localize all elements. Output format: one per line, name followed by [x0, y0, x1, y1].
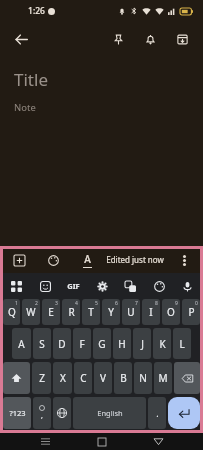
button[interactable]: H	[113, 328, 131, 359]
button[interactable]: M	[154, 362, 172, 394]
button[interactable]: Translate	[120, 276, 140, 296]
button[interactable]: ?123	[3, 397, 31, 429]
button[interactable]: S	[33, 328, 51, 359]
button[interactable]: T	[82, 299, 100, 325]
button[interactable]: Change language	[53, 397, 71, 429]
staticText: GIF	[67, 281, 80, 291]
staticText: C	[80, 371, 87, 385]
button[interactable]: Themes	[149, 276, 169, 296]
button[interactable]: Voice input	[177, 276, 197, 296]
button[interactable]: D	[53, 328, 71, 359]
button[interactable]: Back	[8, 26, 34, 52]
staticText: I	[149, 305, 153, 319]
staticText: 6	[115, 300, 118, 307]
staticText: E	[48, 305, 54, 319]
staticText: Edited just now	[106, 254, 164, 265]
staticText: L	[179, 337, 185, 351]
staticText: 5	[95, 300, 98, 307]
button[interactable]: Reminder	[137, 26, 163, 52]
button[interactable]: K	[153, 328, 171, 359]
button[interactable]: Settings	[92, 276, 112, 296]
button[interactable]: X	[53, 362, 72, 394]
staticText: 8	[155, 300, 158, 307]
staticText: N	[139, 371, 147, 385]
staticText: J	[141, 337, 144, 351]
staticText: Note	[14, 101, 36, 114]
staticText: Title	[14, 68, 48, 91]
staticText: K	[159, 337, 166, 351]
staticText: B	[120, 371, 127, 385]
button[interactable]: Color palette	[43, 250, 63, 270]
button[interactable]: B	[114, 362, 132, 394]
staticText: G	[98, 337, 106, 351]
button[interactable]: E	[42, 299, 60, 325]
staticText: 4	[75, 300, 78, 307]
button[interactable]: Home	[90, 433, 114, 450]
staticText: 2	[35, 300, 38, 307]
staticText: 9	[175, 300, 178, 307]
button[interactable]: V	[94, 362, 112, 394]
button[interactable]: G	[93, 328, 111, 359]
button[interactable]: Backspace	[174, 362, 200, 394]
staticText: V	[100, 371, 106, 385]
button[interactable]: Enter	[168, 397, 200, 429]
button[interactable]: Q	[3, 299, 20, 325]
staticText: P	[188, 305, 195, 319]
staticText: 1	[15, 300, 18, 307]
staticText: .	[156, 407, 159, 419]
button[interactable]: Recents	[33, 433, 57, 450]
button[interactable]: More options	[174, 250, 194, 270]
button[interactable]: Archive	[169, 26, 195, 52]
button[interactable]: Stickers	[35, 276, 55, 296]
button[interactable]: F	[73, 328, 91, 359]
staticText: ,	[41, 411, 43, 421]
button[interactable]: N	[134, 362, 152, 394]
staticText: 3	[55, 300, 58, 307]
button[interactable]: L	[173, 328, 191, 359]
staticText: Y	[108, 305, 114, 319]
button[interactable]: P	[182, 299, 200, 325]
staticText: D	[58, 337, 66, 351]
button[interactable]: I	[142, 299, 160, 325]
button[interactable]: Back	[146, 433, 170, 450]
staticText: Q	[8, 305, 16, 319]
staticText: 1:26	[28, 5, 45, 17]
staticText: U	[127, 305, 135, 319]
button[interactable]: Z	[32, 362, 51, 394]
button[interactable]: U	[122, 299, 140, 325]
button[interactable]: GIF	[63, 276, 83, 296]
button[interactable]: Shift	[3, 362, 30, 394]
staticText: A	[18, 337, 25, 351]
button[interactable]: English	[73, 397, 146, 429]
staticText: ?123	[9, 408, 26, 418]
staticText: X	[60, 371, 66, 385]
staticText: 7	[135, 300, 138, 307]
button[interactable]: O	[162, 299, 180, 325]
button[interactable]: J	[133, 328, 151, 359]
button[interactable]: C	[74, 362, 92, 394]
button[interactable]: W	[22, 299, 40, 325]
staticText: M	[158, 371, 168, 385]
staticText: W	[26, 305, 36, 319]
staticText: Z	[39, 371, 45, 385]
button[interactable]: Add	[9, 250, 29, 270]
button[interactable]: R	[62, 299, 80, 325]
button[interactable]: Pin	[105, 26, 131, 52]
staticText: H	[118, 337, 126, 351]
staticText: A	[84, 252, 91, 266]
button[interactable]: A	[12, 328, 31, 359]
staticText: S	[39, 337, 45, 351]
staticText: T	[88, 305, 94, 319]
staticText: O	[167, 305, 175, 319]
staticText: 0	[195, 300, 198, 307]
button[interactable]: Period	[148, 397, 166, 429]
button[interactable]: Y	[102, 299, 120, 325]
button[interactable]: Apps	[6, 276, 26, 296]
staticText: F	[79, 337, 85, 351]
button[interactable]: Format text	[77, 250, 97, 270]
staticText: R	[68, 305, 75, 319]
button[interactable]: Emoji and comma	[33, 397, 51, 429]
staticText: English	[97, 408, 123, 418]
